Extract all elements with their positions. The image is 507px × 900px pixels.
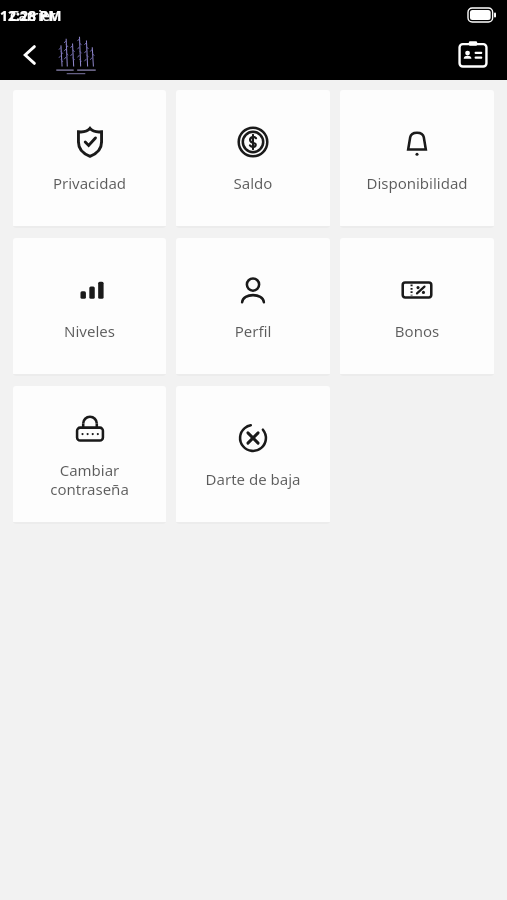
staticText: Niveles (19, 321, 160, 341)
button[interactable]: Privacidad (13, 90, 166, 228)
staticText: 12:28 PM (0, 6, 507, 25)
staticText: Saldo (182, 173, 324, 193)
button[interactable]: Disponibilidad (340, 90, 494, 228)
button[interactable]: Saldo (176, 90, 330, 228)
button[interactable]: Bonos (340, 238, 494, 376)
staticText: Bonos (346, 321, 488, 341)
staticText: Cambiar contraseña (19, 460, 160, 499)
staticText: Darte de baja (182, 469, 324, 489)
button[interactable]: Perfil (176, 238, 330, 376)
button[interactable]: Cambiar contraseña (13, 386, 166, 524)
button[interactable]: Niveles (13, 238, 166, 376)
staticText: Privacidad (19, 173, 160, 193)
button[interactable]: Darte de baja (176, 386, 330, 524)
staticText: Perfil (182, 321, 324, 341)
staticText: Carrier (10, 6, 507, 25)
staticText: Disponibilidad (346, 173, 488, 193)
button[interactable]: Back (8, 33, 52, 77)
button[interactable]: Profile card (451, 33, 495, 77)
